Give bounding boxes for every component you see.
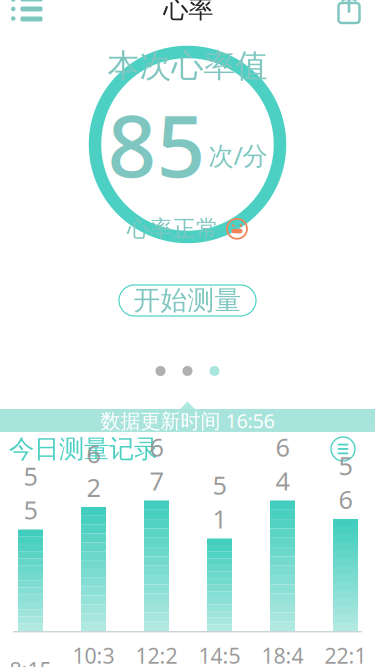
button[interactable]: 开始测量 (119, 285, 256, 316)
staticText: 64 (275, 430, 289, 497)
staticText: 心率 (163, 0, 213, 24)
button[interactable]: 菜单 (0, 0, 53, 29)
button[interactable]: 分享 (323, 0, 375, 29)
staticText: 8:15 (9, 655, 51, 667)
staticText: 18:42 (261, 641, 303, 667)
staticText: 56 (338, 449, 352, 516)
staticText: 次/分 (208, 138, 267, 172)
staticText: 51 (212, 468, 226, 535)
staticText: 12:21 (135, 641, 177, 667)
staticText: 22:10 (324, 641, 366, 667)
button[interactable]: 排序方式 (323, 429, 375, 469)
staticText: 14:52 (198, 641, 240, 667)
staticText: 今日测量记录 (9, 433, 159, 464)
staticText: 10:32 (72, 641, 114, 667)
staticText: 心率正常 (127, 215, 219, 243)
staticText: 62 (86, 437, 100, 504)
staticText: 55 (23, 459, 37, 526)
staticText: 本次心率值 (107, 46, 267, 85)
staticText: 数据更新时间 16:56 (100, 407, 274, 434)
staticText: 85 (107, 87, 205, 201)
staticText: 67 (149, 430, 163, 497)
staticText: 开始测量 (133, 284, 241, 317)
